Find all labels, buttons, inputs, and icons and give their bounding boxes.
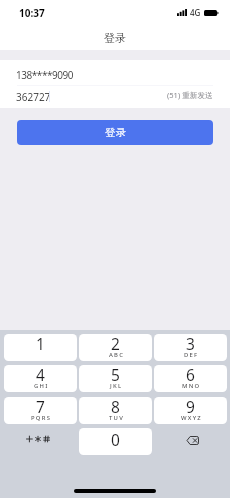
button[interactable]: 6	[154, 365, 227, 392]
staticText: MNO	[182, 382, 201, 390]
staticText: 4G	[190, 7, 201, 18]
button[interactable]: 1	[4, 334, 77, 361]
button[interactable]: 0	[79, 428, 152, 455]
staticText: 6	[186, 365, 195, 385]
staticText: 10:37	[19, 6, 45, 20]
staticText: 1	[36, 334, 45, 354]
staticText: WXYZ	[181, 414, 202, 422]
staticText: 138****9090	[16, 68, 74, 82]
staticText: 9	[186, 397, 195, 417]
button[interactable]: 5	[79, 365, 152, 392]
button[interactable]: 4	[4, 365, 77, 392]
button[interactable]: Delete	[154, 428, 227, 455]
staticText: JKL	[110, 382, 123, 390]
button[interactable]: 2	[79, 334, 152, 361]
button[interactable]: 8	[79, 397, 152, 424]
button[interactable]: 9	[154, 397, 227, 424]
staticText: TUV	[109, 414, 125, 422]
staticText: 5	[111, 365, 120, 385]
button[interactable]: Symbols	[4, 428, 77, 455]
staticText: DEF	[184, 351, 199, 359]
staticText: ABC	[109, 351, 125, 359]
staticText: PQRS	[31, 414, 52, 422]
staticText: 登录	[104, 31, 126, 45]
button[interactable]: 3	[154, 334, 227, 361]
button[interactable]: 登录	[17, 120, 213, 145]
staticText: 7	[36, 397, 45, 417]
staticText: 362727	[16, 90, 51, 104]
button[interactable]: 7	[4, 397, 77, 424]
staticText: 4	[36, 365, 45, 385]
staticText: 0	[111, 429, 120, 450]
staticText: 2	[111, 334, 120, 354]
staticText: (51) 重新发送	[167, 90, 213, 100]
staticText: 8	[111, 397, 120, 417]
staticText: GHI	[34, 382, 49, 390]
staticText: 登录	[105, 126, 126, 139]
button[interactable]: (51) 重新发送	[167, 90, 213, 100]
staticText: 3	[186, 334, 195, 354]
